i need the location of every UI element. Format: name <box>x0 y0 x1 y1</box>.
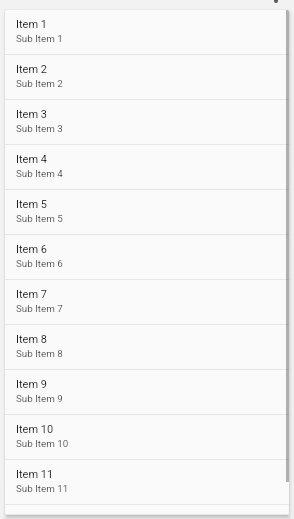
staticText: Item 4 <box>16 153 47 166</box>
staticText: Item 7 <box>16 288 47 301</box>
staticText: Item 8 <box>16 333 47 346</box>
staticText: Sub Item 6 <box>16 258 63 269</box>
staticText: Item 6 <box>16 243 47 256</box>
button[interactable]: Item 7 <box>5 280 289 325</box>
staticText: Sub Item 9 <box>16 393 63 404</box>
staticText: Sub Item 8 <box>16 348 63 359</box>
staticText: Item 1 <box>16 18 47 31</box>
button[interactable]: Item 9 <box>5 370 289 415</box>
staticText: Item 2 <box>16 63 47 76</box>
staticText: Sub Item 1 <box>16 33 63 44</box>
button[interactable]: Item 12 <box>5 505 289 515</box>
staticText: Sub Item 11 <box>16 483 69 494</box>
button[interactable]: Item 11 <box>5 460 289 505</box>
button[interactable]: Item 8 <box>5 325 289 370</box>
staticText: Sub Item 10 <box>16 438 69 449</box>
staticText: Item 9 <box>16 378 47 391</box>
staticText: Sub Item 7 <box>16 303 63 314</box>
staticText: Sub Item 5 <box>16 213 63 224</box>
staticText: Sub Item 3 <box>16 123 63 134</box>
button[interactable]: Item 5 <box>5 190 289 235</box>
button[interactable]: More options <box>274 0 278 3</box>
button[interactable]: Item 4 <box>5 145 289 190</box>
staticText: Sub Item 2 <box>16 78 63 89</box>
button[interactable]: Item 2 <box>5 55 289 100</box>
button[interactable]: Item 6 <box>5 235 289 280</box>
staticText: Item 3 <box>16 108 47 121</box>
staticText: Item 12 <box>16 513 54 515</box>
staticText: Sub Item 4 <box>16 168 63 179</box>
button[interactable]: Item 3 <box>5 100 289 145</box>
staticText: Item 5 <box>16 198 47 211</box>
button[interactable]: Item 1 <box>5 10 289 55</box>
button[interactable]: Item 10 <box>5 415 289 460</box>
staticText: Item 11 <box>16 468 54 481</box>
staticText: Item 10 <box>16 423 54 436</box>
